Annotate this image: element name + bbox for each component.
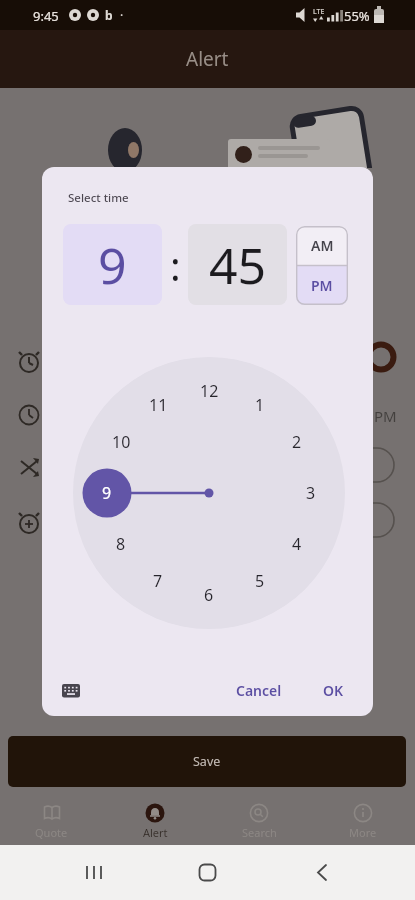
button[interactable]: More (311, 790, 415, 845)
staticText: 4 (292, 533, 302, 555)
staticText: OK (323, 681, 344, 700)
staticText: 10 (112, 431, 131, 453)
button[interactable]: 45 (188, 224, 287, 305)
staticText: : (170, 238, 181, 292)
staticText: Save (193, 753, 221, 770)
button[interactable]: AM (296, 226, 348, 265)
staticText: Cancel (236, 681, 282, 700)
staticText: 9 (102, 482, 112, 504)
staticText: 9:45 (33, 7, 59, 25)
staticText: b (105, 7, 113, 23)
staticText: Quote (35, 825, 68, 840)
staticText: Alert (186, 46, 229, 72)
staticText: 2 (292, 431, 302, 453)
staticText: 7 (153, 570, 163, 592)
staticText: 1 (255, 394, 265, 416)
button[interactable]: Save (8, 736, 406, 787)
staticText: PM (311, 276, 333, 295)
staticText: 11 (149, 394, 168, 416)
staticText: LTE (313, 7, 325, 17)
staticText: 45 (209, 231, 267, 299)
button[interactable]: Search (207, 790, 311, 845)
button[interactable]: Alert (103, 790, 207, 845)
staticText: 3 (306, 482, 316, 504)
button[interactable]: OK (313, 678, 354, 702)
staticText: 55% (344, 7, 370, 25)
staticText: Search (242, 825, 277, 840)
staticText: Alert (143, 825, 168, 840)
staticText: 5 (255, 570, 265, 592)
staticText: 6 (204, 584, 214, 606)
staticText: More (349, 825, 377, 840)
button[interactable]: PM (296, 265, 348, 305)
button[interactable]: Cancel (229, 678, 289, 702)
staticText: 12 (200, 380, 219, 402)
staticText: AM (311, 236, 334, 255)
staticText: PM (374, 406, 397, 426)
staticText: · (120, 7, 124, 23)
button[interactable] (62, 684, 80, 698)
staticText: 9 (98, 231, 127, 299)
button[interactable]: 9 (63, 224, 162, 305)
button[interactable]: Quote (0, 790, 103, 845)
staticText: Select time (68, 190, 129, 206)
staticText: 8 (116, 533, 126, 555)
